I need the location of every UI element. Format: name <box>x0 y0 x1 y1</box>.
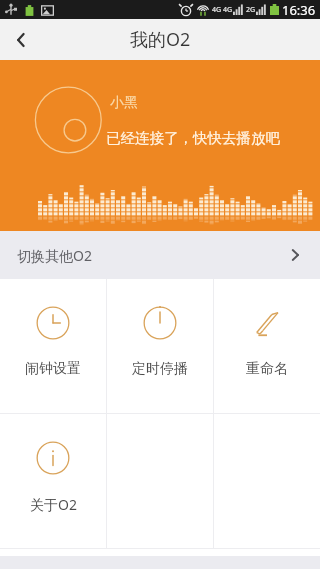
staticText: 闹钟设置 <box>25 360 81 378</box>
button[interactable]: 切换其他O2 <box>0 231 320 279</box>
staticText: 2G <box>246 5 256 15</box>
staticText: 4G <box>223 5 233 15</box>
button[interactable]: 关于O2 <box>0 414 106 548</box>
button[interactable]: 闹钟设置 <box>0 279 106 413</box>
staticText: 我的O2 <box>130 27 191 52</box>
staticText: 重命名 <box>246 360 288 378</box>
staticText: 关于O2 <box>30 495 77 514</box>
staticText: 定时停播 <box>132 360 188 378</box>
button[interactable]: 定时停播 <box>107 279 213 413</box>
staticText: 16:36 <box>282 1 316 19</box>
button[interactable]: Back <box>0 19 44 60</box>
staticText: 切换其他O2 <box>17 246 92 265</box>
button[interactable]: 重命名 <box>214 279 320 413</box>
staticText: 小黑 <box>110 94 138 112</box>
staticText: 4G <box>212 5 222 15</box>
staticText: 已经连接了，快快去播放吧 <box>106 129 280 147</box>
